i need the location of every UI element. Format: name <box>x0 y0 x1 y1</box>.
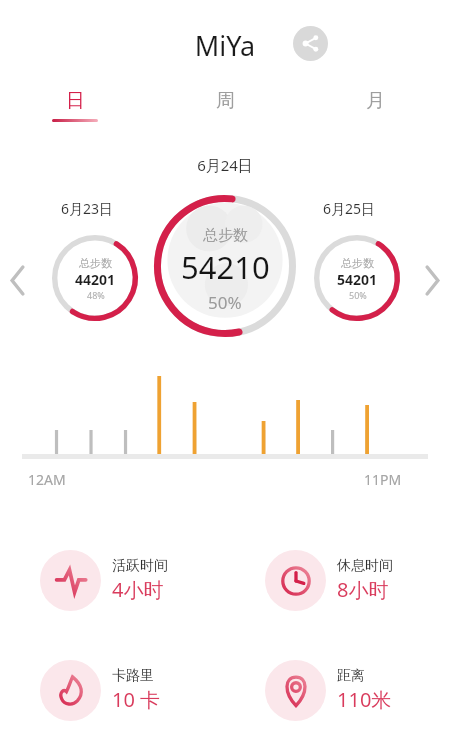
button[interactable]: 总步数 <box>313 234 401 322</box>
button[interactable]: Next day <box>416 258 448 302</box>
staticText: 总步数 <box>79 256 112 270</box>
staticText: 10 卡 <box>112 686 161 713</box>
staticText: 50% <box>349 289 367 301</box>
button[interactable]: Distance <box>265 659 440 721</box>
button[interactable]: Calories <box>40 659 215 721</box>
staticText: 总步数 <box>203 226 248 245</box>
staticText: 110米 <box>337 686 392 713</box>
other: Rest time <box>265 550 326 611</box>
staticText: 50% <box>208 291 242 314</box>
staticText: 活跃时间 <box>112 557 168 575</box>
button[interactable]: 总步数 <box>153 194 297 338</box>
staticText: 12AM <box>28 470 66 489</box>
staticText: 距离 <box>337 667 365 685</box>
staticText: 日 <box>66 89 85 113</box>
staticText: 11PM <box>364 470 402 489</box>
staticText: 8小时 <box>337 576 389 603</box>
button[interactable]: 月 <box>300 82 450 130</box>
staticText: 总步数 <box>341 256 374 270</box>
button[interactable]: Active time <box>40 549 215 611</box>
staticText: 48% <box>87 289 105 301</box>
staticText: 4小时 <box>112 576 164 603</box>
staticText: 卡路里 <box>112 667 154 685</box>
staticText: 6月25日 <box>323 199 376 218</box>
staticText: 周 <box>216 89 235 113</box>
staticText: 6月24日 <box>0 155 450 175</box>
staticText: 54201 <box>337 270 378 289</box>
staticText: 6月23日 <box>61 199 114 218</box>
button[interactable]: Previous day <box>2 258 34 302</box>
button[interactable]: 周 <box>150 82 300 130</box>
other: Active time <box>40 550 101 611</box>
staticText: 54210 <box>181 246 270 288</box>
button[interactable]: Share <box>293 26 328 61</box>
staticText: 休息时间 <box>337 557 393 575</box>
staticText: 月 <box>366 89 385 113</box>
button[interactable]: Rest time <box>265 549 440 611</box>
other: Calories <box>40 660 101 721</box>
button[interactable]: 总步数 <box>51 234 139 322</box>
staticText: MiYa <box>0 27 450 64</box>
other: Distance <box>265 660 326 721</box>
staticText: 44201 <box>75 270 116 289</box>
button[interactable]: 日 <box>0 82 150 130</box>
